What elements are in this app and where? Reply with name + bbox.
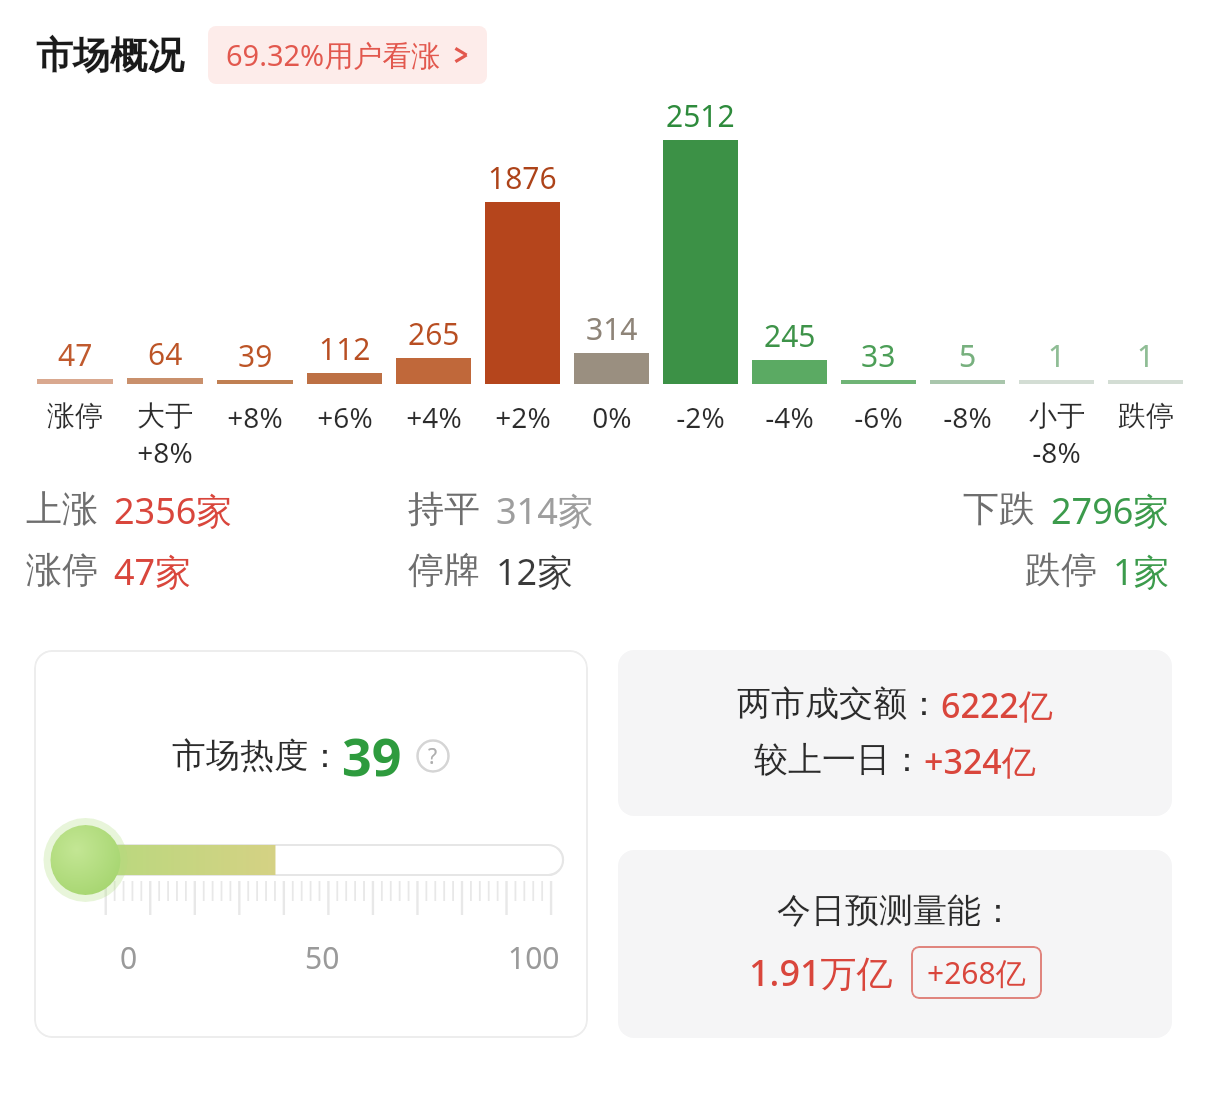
staticText: 314 <box>586 308 638 349</box>
staticText: 下跌 <box>963 486 1035 531</box>
button[interactable]: 今日预测量能： <box>618 850 1172 1038</box>
staticText: +6% <box>317 398 373 436</box>
staticText: 今日预测量能： <box>777 889 1015 932</box>
staticText: 64 <box>148 333 183 374</box>
button[interactable]: 两市成交额： <box>618 650 1172 816</box>
staticText: 12家 <box>496 547 574 596</box>
staticText: 大于 <box>137 398 193 433</box>
staticText: 1 <box>1137 335 1155 376</box>
button[interactable]: 69.32%用户看涨 <box>208 26 487 84</box>
staticText: 跌停 <box>1118 398 1174 433</box>
staticText: +8% <box>137 433 193 471</box>
staticText: 33 <box>861 335 896 376</box>
button[interactable]: 说明 <box>416 739 450 773</box>
staticText: +8% <box>227 398 283 436</box>
staticText: -8% <box>943 398 992 436</box>
staticText: 1家 <box>1113 547 1170 596</box>
staticText: 较上一日： <box>754 738 924 781</box>
staticText: 停牌 <box>408 547 480 592</box>
staticText: 持平 <box>408 486 480 531</box>
staticText: 跌停 <box>1025 547 1097 592</box>
staticText: 涨停 <box>26 547 98 592</box>
staticText: 245 <box>764 315 816 356</box>
staticText: ? <box>428 742 438 771</box>
staticText: 314家 <box>496 486 594 535</box>
button[interactable]: 市场热度： <box>34 650 588 1038</box>
staticText: 2512 <box>666 95 735 136</box>
staticText: 0 <box>120 937 138 978</box>
staticText: -2% <box>676 398 725 436</box>
staticText: 1 <box>1048 335 1066 376</box>
staticText: 1.91万亿 <box>749 948 893 997</box>
staticText: 上涨 <box>26 486 98 531</box>
staticText: 39 <box>342 720 402 791</box>
staticText: 小于 <box>1029 398 1085 433</box>
staticText: 39 <box>238 335 273 376</box>
staticText: 2796家 <box>1051 486 1170 535</box>
staticText: 涨停 <box>47 398 103 433</box>
staticText: +268亿 <box>927 952 1026 993</box>
staticText: 112 <box>319 328 371 369</box>
staticText: 2356家 <box>114 486 233 535</box>
staticText: 市场热度： <box>172 734 342 777</box>
staticText: 6222亿 <box>941 682 1053 728</box>
staticText: 265 <box>408 313 460 354</box>
staticText: +2% <box>495 398 551 436</box>
staticText: -6% <box>854 398 903 436</box>
staticText: 1876 <box>488 157 557 198</box>
staticText: -4% <box>765 398 814 436</box>
staticText: +4% <box>406 398 462 436</box>
staticText: 两市成交额： <box>737 682 941 725</box>
staticText: 69.32%用户看涨 <box>226 35 441 75</box>
staticText: +324亿 <box>924 738 1036 784</box>
staticText: -8% <box>1032 433 1081 471</box>
staticText: 0% <box>592 398 632 436</box>
staticText: 47 <box>58 334 93 375</box>
staticText: 50 <box>305 937 340 978</box>
staticText: 100 <box>508 937 560 978</box>
staticText: 市场概况 <box>36 32 184 79</box>
staticText: 47家 <box>114 547 192 596</box>
staticText: 5 <box>959 335 977 376</box>
